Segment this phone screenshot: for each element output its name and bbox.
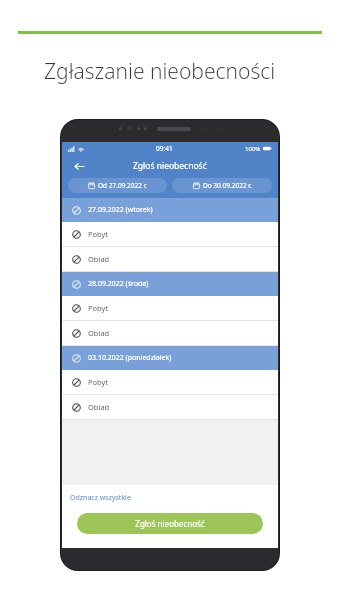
button[interactable]: Zgłoś nieobecność: [77, 513, 263, 534]
button[interactable]: 28.09.2022 (środa): [62, 272, 278, 296]
staticText: Obiad: [88, 328, 110, 338]
staticText: 27.09.2022 (wtorek): [88, 205, 153, 215]
staticText: Pobyt: [88, 377, 109, 387]
staticText: Pobyt: [88, 303, 109, 313]
staticText: Zgłoś nieobecność: [135, 518, 205, 529]
button[interactable]: Pobyt: [62, 370, 278, 394]
button[interactable]: Obiad: [62, 321, 278, 345]
button[interactable]: Obiad: [62, 247, 278, 271]
button[interactable]: Obiad: [62, 395, 278, 419]
staticText: Obiad: [88, 402, 110, 412]
button[interactable]: 27.09.2022 (wtorek): [62, 198, 278, 222]
staticText: Obiad: [88, 254, 110, 264]
staticText: 03.10.2022 (poniedziałek): [88, 353, 172, 363]
button[interactable]: Odznacz wszystkie: [69, 491, 132, 505]
button[interactable]: Od 27.09.2022 r.: [68, 178, 167, 193]
staticText: Zgłoś nieobecność: [133, 160, 207, 172]
button[interactable]: Pobyt: [62, 222, 278, 246]
staticText: 09:41: [156, 144, 173, 153]
staticText: Zgłaszanie nieobecności: [44, 57, 276, 86]
staticText: 28.09.2022 (środa): [88, 279, 149, 289]
button[interactable]: 03.10.2022 (poniedziałek): [62, 346, 278, 370]
staticText: Pobyt: [88, 229, 109, 239]
button[interactable]: Pobyt: [62, 296, 278, 320]
button[interactable]: Do 30.09.2022 r.: [172, 178, 272, 193]
staticText: Odznacz wszystkie: [70, 493, 131, 503]
staticText: Do 30.09.2022 r.: [203, 181, 252, 190]
staticText: Od 27.09.2022 r.: [98, 181, 148, 190]
staticText: 100%: [245, 145, 261, 153]
button[interactable]: Back: [70, 157, 88, 175]
